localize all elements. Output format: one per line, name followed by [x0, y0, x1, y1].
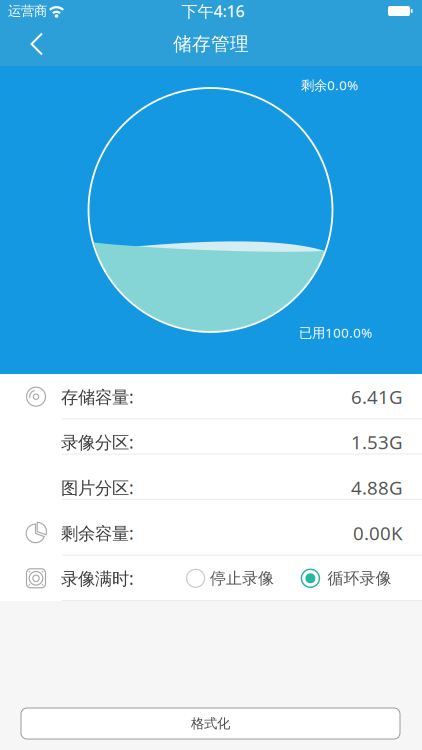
staticText: 4.88G — [351, 475, 403, 500]
button[interactable]: 循环录像 — [301, 556, 392, 601]
staticText: 1.53G — [351, 430, 403, 454]
staticText: 图片分区: — [61, 476, 134, 499]
staticText: 停止录像 — [210, 568, 274, 588]
staticText: 已用100.0% — [299, 324, 372, 341]
staticText: 运营商 — [8, 3, 47, 19]
staticText: 6.41G — [351, 384, 403, 409]
staticText: 循环录像 — [328, 568, 392, 588]
staticText: 剩余0.0% — [301, 76, 358, 94]
button[interactable]: 停止录像 — [187, 556, 275, 601]
staticText: 录像分区: — [61, 431, 134, 454]
staticText: 0.00K — [353, 520, 403, 545]
staticText: 存储容量: — [61, 385, 134, 408]
staticText: 剩余容量: — [61, 521, 134, 544]
staticText: 格式化 — [191, 715, 230, 732]
staticText: 录像满时: — [61, 567, 134, 590]
button[interactable]: Back — [0, 22, 62, 66]
button[interactable]: 格式化 — [21, 708, 400, 739]
staticText: 下午4:16 — [181, 0, 244, 22]
staticText: 储存管理 — [173, 32, 249, 55]
